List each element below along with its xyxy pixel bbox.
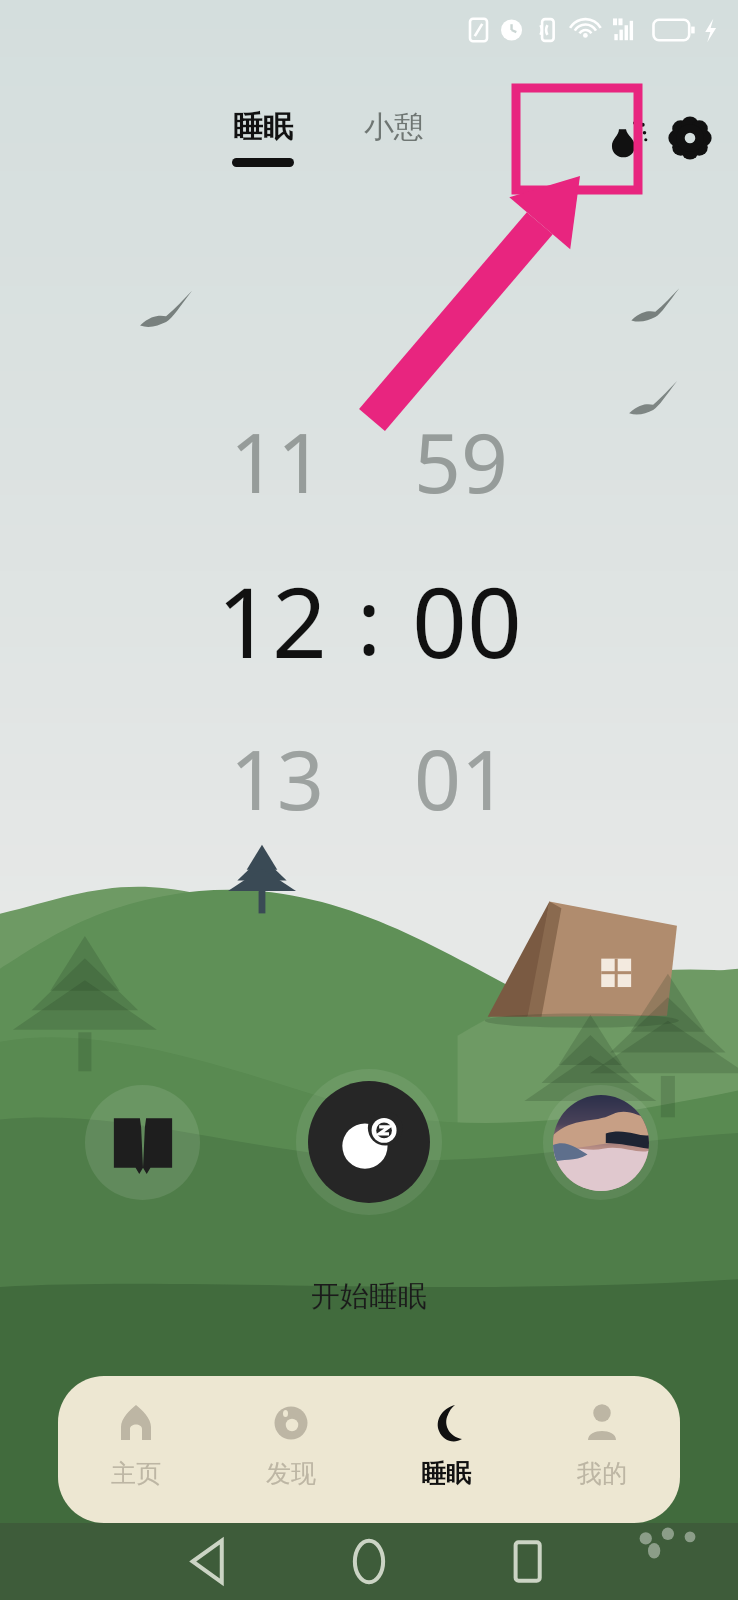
staticText: 00 [412,555,522,686]
staticText: 59 [414,405,508,517]
staticText: 主页 [111,1458,161,1489]
staticText: 开始睡眠 [311,1278,427,1315]
staticText: 13 [230,722,324,834]
button[interactable]: 睡眠 [368,1398,524,1489]
button[interactable]: 小憩 [364,108,424,146]
staticText: 01 [414,722,508,834]
button[interactable]: 白噪音场景 [543,1085,658,1200]
button[interactable]: 发现 [213,1398,368,1489]
staticText: : [357,559,382,682]
staticText: 11 [230,405,324,517]
staticText: 睡眠 [233,108,293,146]
button[interactable]: 开始睡眠 [308,1081,430,1203]
button[interactable]: 我的 [524,1398,680,1489]
staticText: 我的 [577,1458,627,1489]
staticText: 小憩 [364,108,424,146]
button[interactable]: 香薰 [598,110,654,166]
button[interactable]: 设置 [662,110,718,166]
button[interactable]: 助眠读物 [85,1085,200,1200]
button[interactable]: 睡眠 [232,108,294,167]
staticText: 12 [217,555,327,686]
staticText: 睡眠 [421,1458,471,1489]
button[interactable]: 主页 [58,1398,213,1489]
staticText: 发现 [266,1458,316,1489]
